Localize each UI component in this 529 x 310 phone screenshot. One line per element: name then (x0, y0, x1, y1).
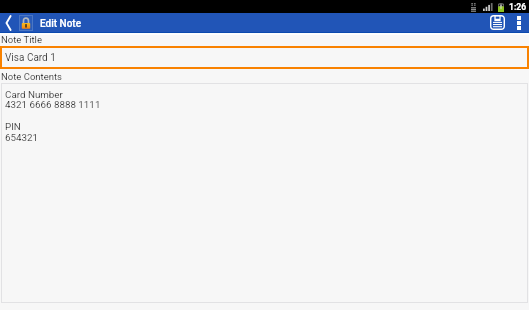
button[interactable]: Back (0, 13, 17, 32)
button[interactable]: Note title field (0, 46, 529, 69)
staticText: 1:26 (509, 2, 527, 12)
button[interactable]: Save (487, 13, 507, 32)
staticText: Card Number 4321 6666 8888 1111 PIN 6543… (5, 89, 101, 144)
staticText: Note Contents (1, 71, 62, 82)
staticText: Edit Note (40, 18, 82, 30)
button[interactable]: More options (515, 13, 523, 32)
staticText: Note Title (1, 34, 42, 45)
button[interactable]: Note contents field (1, 83, 528, 303)
staticText: Visa Card 1 (5, 52, 56, 64)
